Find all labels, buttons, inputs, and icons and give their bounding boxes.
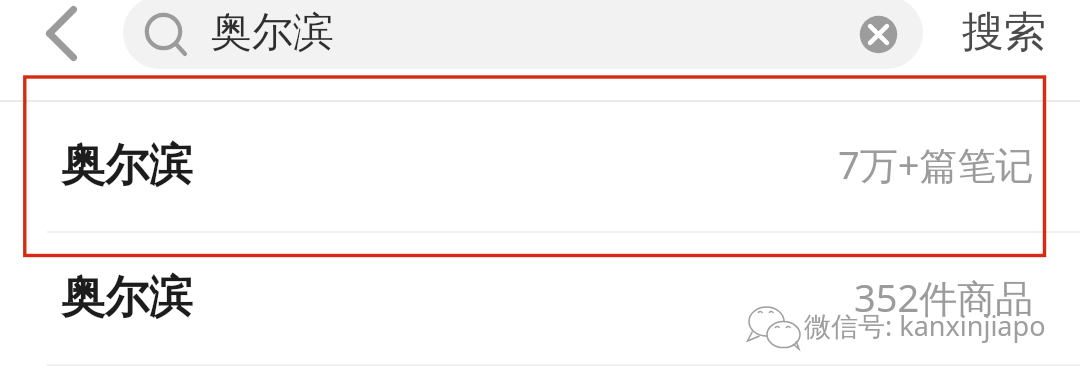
staticText: 微信号: kanxinjiapo	[804, 307, 1046, 344]
staticText: 搜索	[962, 6, 1046, 59]
staticText: 奥尔滨	[61, 138, 193, 193]
staticText: 352件商品	[854, 271, 1034, 323]
staticText: 7万+篇笔记	[838, 138, 1034, 190]
button[interactable]: 奥尔滨	[0, 233, 1080, 366]
button[interactable]: 搜索	[930, 0, 1080, 70]
button[interactable]: Back	[0, 0, 118, 70]
button[interactable]: 奥尔滨	[123, 0, 923, 69]
button[interactable]: Clear search	[855, 11, 902, 58]
staticText: 奥尔滨	[61, 270, 193, 325]
button[interactable]: 奥尔滨	[0, 78, 1080, 233]
staticText: 奥尔滨	[211, 7, 334, 59]
